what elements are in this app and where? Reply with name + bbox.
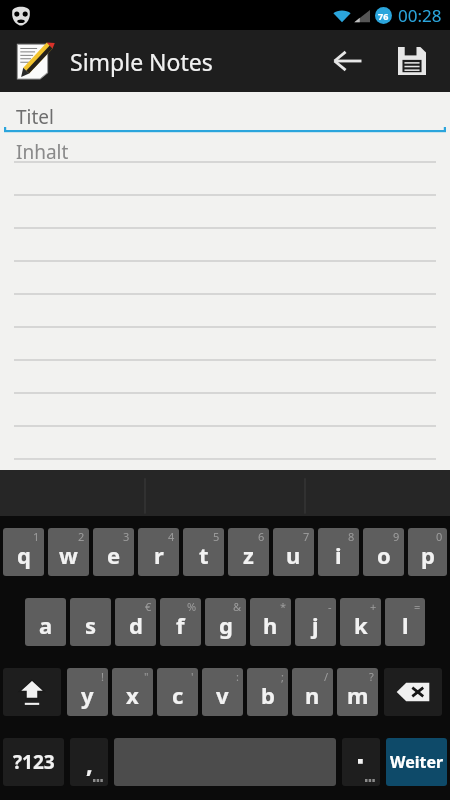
staticText: w xyxy=(59,540,78,570)
button[interactable]: = xyxy=(385,598,425,646)
staticText: = xyxy=(414,599,421,614)
staticText: € xyxy=(145,599,152,614)
button[interactable]: Shift xyxy=(3,668,61,716)
staticText: r xyxy=(154,540,164,570)
staticText: ? xyxy=(369,669,374,684)
staticText: h xyxy=(263,610,278,640)
staticText: c xyxy=(172,680,184,710)
staticText: ?123 xyxy=(13,749,55,775)
button[interactable]: 7 xyxy=(273,528,314,576)
staticText: m xyxy=(347,680,369,710)
staticText: 7 xyxy=(303,529,310,544)
button[interactable]: 1 xyxy=(3,528,44,576)
staticText: Simple Notes xyxy=(70,46,213,77)
staticText: l xyxy=(402,610,409,640)
staticText: : xyxy=(236,669,239,684)
button[interactable]: " xyxy=(112,668,153,716)
staticText: + xyxy=(370,599,377,614)
staticText: f xyxy=(176,610,185,640)
button[interactable]: ' xyxy=(157,668,198,716)
staticText: z xyxy=(243,540,254,570)
staticText: d xyxy=(129,610,143,640)
button[interactable]: ; xyxy=(247,668,288,716)
staticText: 0 xyxy=(436,529,443,544)
staticText: & xyxy=(233,599,242,614)
button[interactable]: + xyxy=(340,598,381,646)
staticText: Titel xyxy=(16,104,54,130)
staticText: ! xyxy=(101,669,104,684)
button[interactable]: Weiter xyxy=(386,738,447,786)
staticText: x xyxy=(126,680,139,710)
staticText: % xyxy=(187,599,197,614)
button[interactable]: Save xyxy=(384,33,440,89)
staticText: p xyxy=(421,540,435,570)
staticText: - xyxy=(328,599,332,614)
staticText: " xyxy=(144,669,149,684)
staticText: k xyxy=(354,610,368,640)
staticText: Inhalt xyxy=(16,139,69,165)
button[interactable]: & xyxy=(205,598,246,646)
staticText: a xyxy=(39,610,53,640)
staticText: / xyxy=(324,669,329,684)
button[interactable]: Back xyxy=(320,33,376,89)
button[interactable]: * xyxy=(250,598,291,646)
button[interactable]: - xyxy=(295,598,336,646)
button[interactable]: a xyxy=(25,598,66,646)
button[interactable]: 2 xyxy=(48,528,89,576)
staticText: i xyxy=(335,540,342,570)
button[interactable]: 8 xyxy=(318,528,359,576)
staticText: 3 xyxy=(123,529,130,544)
button[interactable]: 3 xyxy=(93,528,134,576)
staticText: 00:28 xyxy=(398,4,442,27)
staticText: 9 xyxy=(393,529,400,544)
staticText: g xyxy=(219,610,233,640)
button[interactable]: 5 xyxy=(183,528,224,576)
staticText: Weiter xyxy=(390,751,444,773)
button[interactable]: Period xyxy=(342,738,380,786)
staticText: v xyxy=(216,680,229,710)
staticText: 76 xyxy=(378,10,389,22)
button[interactable]: 0 xyxy=(408,528,447,576)
staticText: u xyxy=(286,540,301,570)
button[interactable]: / xyxy=(292,668,333,716)
staticText: 5 xyxy=(213,529,220,544)
staticText: b xyxy=(261,680,275,710)
staticText: 8 xyxy=(348,529,355,544)
staticText: q xyxy=(17,540,31,570)
staticText: e xyxy=(107,540,121,570)
staticText: 1 xyxy=(33,529,40,544)
staticText: y xyxy=(81,680,94,710)
button[interactable]: ! xyxy=(67,668,108,716)
button[interactable]: ?123 xyxy=(3,738,64,786)
button[interactable]: 6 xyxy=(228,528,269,576)
staticText: , xyxy=(86,747,93,780)
button[interactable]: ? xyxy=(337,668,378,716)
button[interactable]: 4 xyxy=(138,528,179,576)
staticText: ' xyxy=(191,669,194,684)
button[interactable]: % xyxy=(160,598,201,646)
button[interactable]: 9 xyxy=(363,528,404,576)
staticText: 2 xyxy=(78,529,85,544)
staticText: s xyxy=(85,610,97,640)
staticText: 6 xyxy=(258,529,265,544)
staticText: 4 xyxy=(168,529,175,544)
button[interactable]: Backspace xyxy=(384,668,442,716)
staticText: t xyxy=(199,540,209,570)
button[interactable]: Comma xyxy=(70,738,108,786)
staticText: ; xyxy=(281,669,284,684)
button[interactable]: : xyxy=(202,668,243,716)
staticText: j xyxy=(312,610,319,640)
staticText: o xyxy=(377,540,391,570)
staticText: * xyxy=(280,599,287,614)
button[interactable]: € xyxy=(115,598,156,646)
button[interactable]: s xyxy=(70,598,111,646)
staticText: n xyxy=(305,680,320,710)
